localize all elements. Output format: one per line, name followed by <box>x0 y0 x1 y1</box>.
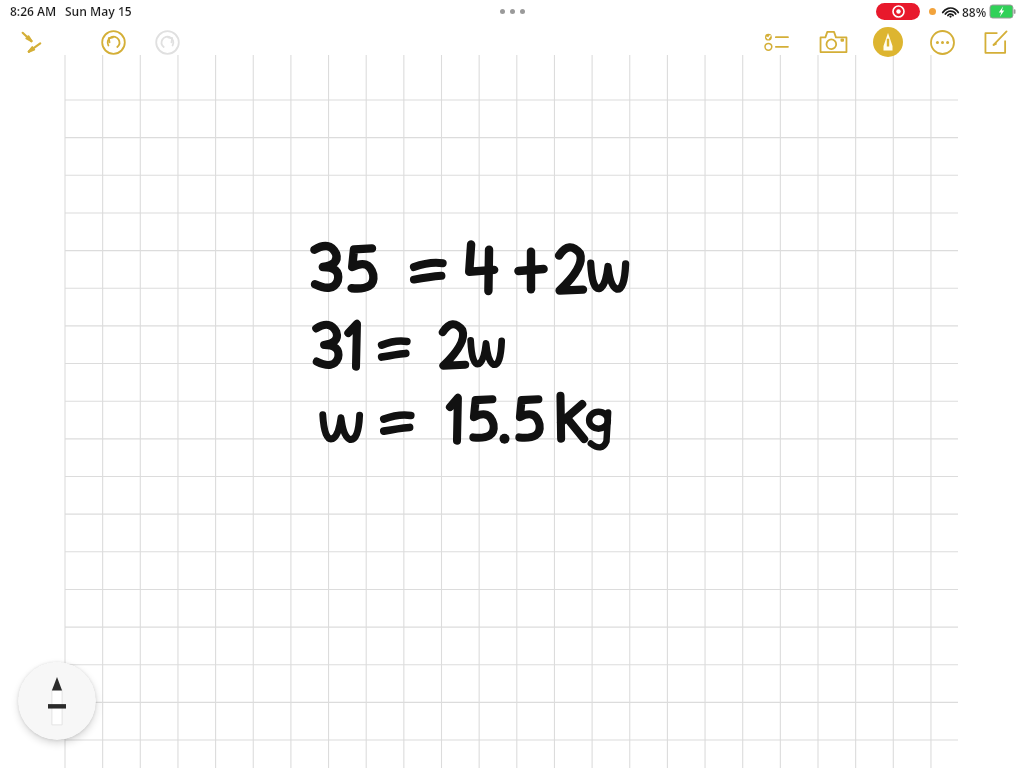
button[interactable]: Checklist <box>756 22 796 62</box>
button[interactable]: Collapse <box>14 25 48 59</box>
button[interactable]: Undo <box>94 23 132 61</box>
button[interactable]: Markup <box>866 22 910 62</box>
staticText: 8:26 AM <box>10 3 57 19</box>
button[interactable]: Camera <box>812 22 854 62</box>
staticText: 88% <box>962 4 987 20</box>
button[interactable]: New note <box>976 22 1016 62</box>
button[interactable]: More <box>922 22 962 62</box>
staticText: Sun May 15 <box>65 3 132 19</box>
button[interactable]: Redo <box>148 23 186 61</box>
button[interactable]: Pen tool <box>18 662 96 740</box>
